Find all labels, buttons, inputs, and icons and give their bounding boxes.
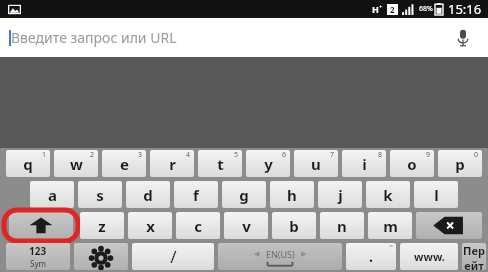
staticText: 123 — [29, 244, 47, 258]
button[interactable]: d — [126, 181, 170, 208]
staticText: h — [287, 185, 297, 205]
staticText: 9 — [426, 150, 431, 160]
staticText: c — [194, 216, 202, 236]
staticText: ◀ — [254, 250, 260, 258]
staticText: 6 — [282, 150, 287, 160]
staticText: d — [143, 185, 153, 205]
button[interactable]: Keyboard settings — [74, 243, 128, 270]
button[interactable]: f — [174, 181, 218, 208]
staticText: 15:16 — [448, 0, 482, 18]
staticText: " — [390, 243, 393, 253]
button[interactable]: u — [294, 150, 338, 177]
button[interactable]: Введите запрос или URL — [0, 18, 488, 57]
staticText: ▶ — [301, 250, 307, 258]
staticText: u — [311, 154, 321, 174]
button[interactable]: h — [270, 181, 314, 208]
staticText: EN(US) — [266, 248, 295, 260]
staticText: 68% — [419, 4, 433, 14]
button[interactable]: m — [368, 212, 412, 239]
staticText: r — [169, 154, 176, 174]
staticText: t — [217, 154, 224, 174]
staticText: o — [407, 154, 417, 174]
staticText: . — [369, 247, 373, 266]
button[interactable]: y — [246, 150, 290, 177]
staticText: 7 — [330, 150, 335, 160]
staticText: v — [242, 216, 251, 236]
staticText: y — [264, 154, 273, 174]
button[interactable]: t — [198, 150, 242, 177]
button[interactable]: v — [224, 212, 268, 239]
staticText: k — [383, 185, 393, 205]
button[interactable]: Shift — [9, 212, 73, 239]
button[interactable]: i — [342, 150, 386, 177]
staticText: 4 — [186, 150, 191, 160]
staticText: f — [193, 185, 199, 205]
staticText: b — [289, 216, 299, 236]
staticText: a — [48, 185, 57, 205]
staticText: e — [120, 154, 129, 174]
button[interactable]: j — [318, 181, 362, 208]
staticText: 3 — [138, 150, 143, 160]
button[interactable]: r — [150, 150, 194, 177]
button[interactable]: e — [102, 150, 146, 177]
button[interactable]: z — [80, 212, 124, 239]
button[interactable]: c — [176, 212, 220, 239]
staticText: q — [23, 154, 33, 174]
button[interactable]: s — [78, 181, 122, 208]
button[interactable]: w — [54, 150, 98, 177]
button[interactable]: b — [272, 212, 316, 239]
staticText: Введите запрос или URL — [11, 28, 177, 47]
staticText: i — [362, 154, 367, 174]
staticText: 8 — [378, 150, 383, 160]
button[interactable]: x — [128, 212, 172, 239]
staticText: m — [383, 216, 398, 236]
staticText: j — [338, 185, 343, 205]
button[interactable]: q — [6, 150, 50, 177]
staticText: 5 — [234, 150, 239, 160]
staticText: s — [96, 185, 104, 205]
button[interactable]: o — [390, 150, 434, 177]
button[interactable]: l — [414, 181, 458, 208]
button[interactable]: 123 — [6, 243, 70, 270]
button[interactable]: Voice search — [448, 23, 478, 53]
staticText: n — [337, 216, 347, 236]
staticText: Перейти — [462, 243, 486, 270]
button[interactable]: g — [222, 181, 266, 208]
staticText: H — [372, 3, 379, 15]
staticText: 2 — [90, 150, 95, 160]
staticText: Sym — [30, 258, 46, 269]
staticText: z — [98, 216, 106, 236]
staticText: 1 — [42, 150, 47, 160]
button[interactable]: Перейти — [462, 243, 486, 270]
staticText: w — [70, 154, 83, 174]
staticText: www. — [414, 249, 445, 264]
staticText: g — [239, 185, 249, 205]
staticText: p — [455, 154, 465, 174]
staticText: 0 — [474, 150, 479, 160]
button[interactable]: n — [320, 212, 364, 239]
button[interactable]: Backspace — [416, 212, 482, 239]
staticText: l — [434, 185, 439, 205]
staticText: / — [170, 245, 177, 268]
button[interactable]: www. — [400, 243, 458, 270]
button[interactable]: a — [30, 181, 74, 208]
staticText: 2 — [390, 4, 395, 15]
button[interactable]: Space — [218, 243, 342, 270]
button[interactable]: / — [132, 243, 214, 270]
button[interactable]: p — [438, 150, 482, 177]
button[interactable]: k — [366, 181, 410, 208]
button[interactable]: . — [346, 243, 396, 270]
staticText: x — [146, 216, 155, 236]
staticText: + — [379, 3, 383, 11]
